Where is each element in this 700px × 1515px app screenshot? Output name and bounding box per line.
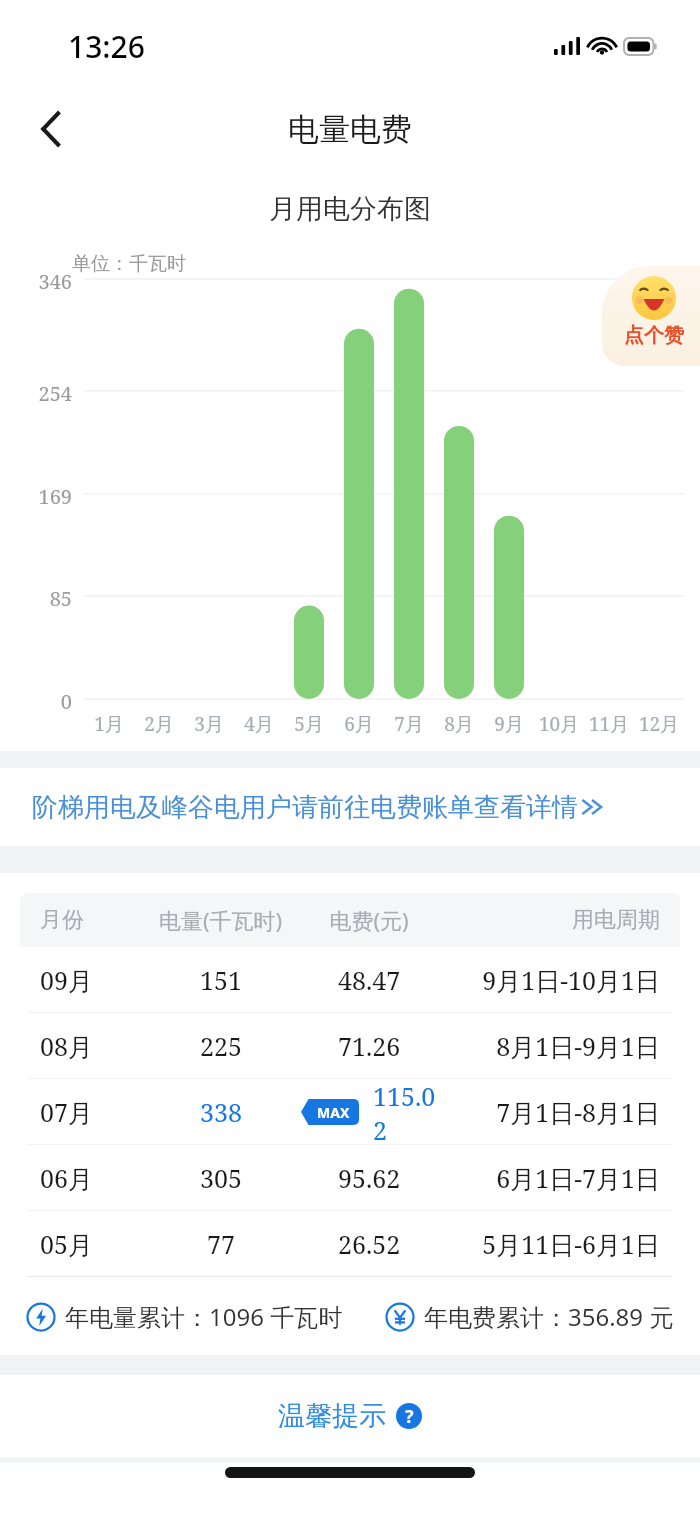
staticText: 26.52 <box>338 1227 401 1261</box>
staticText: 09月 <box>40 963 140 997</box>
button[interactable]: 06月 <box>0 1145 700 1210</box>
button[interactable]: 点个赞 <box>602 266 700 366</box>
staticText: 电费(元) <box>301 905 437 935</box>
staticText: ? <box>405 1404 414 1429</box>
staticText: 77 <box>207 1227 235 1261</box>
button[interactable]: 09月 <box>0 947 700 1012</box>
staticText: 169 <box>0 483 72 505</box>
staticText: 月份 <box>40 906 140 934</box>
staticText: 115.02 <box>373 1079 437 1144</box>
staticText: 电量(千瓦时) <box>140 905 301 935</box>
staticText: 7月 <box>384 711 434 737</box>
staticText: 2月 <box>134 711 184 737</box>
staticText: 年电费累计：356.89 元 <box>424 1300 674 1333</box>
staticText: 阶梯用电及峰谷电用户请前往电费账单查看详情 <box>32 791 578 824</box>
staticText: 用电周期 <box>437 906 660 934</box>
staticText: 年电量累计：1096 千瓦时 <box>65 1300 343 1333</box>
staticText: 6月1日-7月1日 <box>437 1161 660 1195</box>
staticText: 电量电费 <box>288 110 412 149</box>
button[interactable]: 温馨提示 <box>278 1399 422 1433</box>
staticText: 7月1日-8月1日 <box>437 1095 660 1129</box>
staticText: 95.62 <box>338 1161 401 1195</box>
staticText: MAX <box>317 1103 350 1122</box>
staticText: 346 <box>0 268 72 290</box>
staticText: 6月 <box>334 711 384 737</box>
staticText: 12月 <box>634 711 684 737</box>
button[interactable]: 07月 <box>0 1079 700 1144</box>
staticText: 05月 <box>40 1227 140 1261</box>
button[interactable]: 阶梯用电及峰谷电用户请前往电费账单查看详情 <box>0 768 700 846</box>
staticText: 5月 <box>284 711 334 737</box>
staticText: 06月 <box>40 1161 140 1195</box>
staticText: 254 <box>0 380 72 402</box>
staticText: 151 <box>200 963 242 997</box>
staticText: 48.47 <box>338 963 401 997</box>
staticText: 07月 <box>40 1095 140 1129</box>
button[interactable]: 05月 <box>0 1211 700 1276</box>
staticText: 11月 <box>584 711 634 737</box>
staticText: 1月 <box>84 711 134 737</box>
staticText: 71.26 <box>338 1029 401 1063</box>
staticText: 单位：千瓦时 <box>72 252 186 276</box>
staticText: 305 <box>200 1161 242 1195</box>
staticText: 5月11日-6月1日 <box>437 1227 660 1261</box>
staticText: 月用电分布图 <box>269 192 431 226</box>
staticText: 8月 <box>434 711 484 737</box>
staticText: 338 <box>200 1095 242 1129</box>
staticText: 0 <box>0 688 72 710</box>
staticText: 温馨提示 <box>278 1399 386 1433</box>
staticText: 08月 <box>40 1029 140 1063</box>
staticText: 13:26 <box>68 26 145 67</box>
staticText: 10月 <box>534 711 584 737</box>
button[interactable]: Back <box>22 100 80 158</box>
staticText: 3月 <box>184 711 234 737</box>
staticText: 点个赞 <box>624 323 684 348</box>
staticText: 9月1日-10月1日 <box>437 963 660 997</box>
staticText: 9月 <box>484 711 534 737</box>
button[interactable]: 08月 <box>0 1013 700 1078</box>
staticText: 4月 <box>234 711 284 737</box>
staticText: 8月1日-9月1日 <box>437 1029 660 1063</box>
staticText: 85 <box>0 585 72 607</box>
staticText: 225 <box>200 1029 242 1063</box>
